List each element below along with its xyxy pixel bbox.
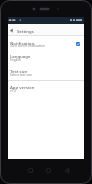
staticText: Settings (17, 28, 34, 34)
staticText: v1.0 (10, 89, 17, 93)
button[interactable]: Language (8, 52, 84, 66)
staticText: Language (10, 53, 31, 59)
button[interactable]: App version (8, 83, 84, 96)
staticText: Notification (10, 40, 35, 46)
staticText: Turn on/off notification (10, 44, 45, 48)
button[interactable]: Text size (8, 67, 84, 81)
staticText: Text size (10, 68, 28, 74)
button[interactable] (76, 42, 80, 46)
staticText: Select text size (10, 73, 32, 77)
button[interactable]: Settings (8, 24, 84, 36)
staticText: App version (10, 84, 35, 90)
staticText: English (10, 58, 21, 62)
button[interactable]: Notification (8, 38, 84, 52)
